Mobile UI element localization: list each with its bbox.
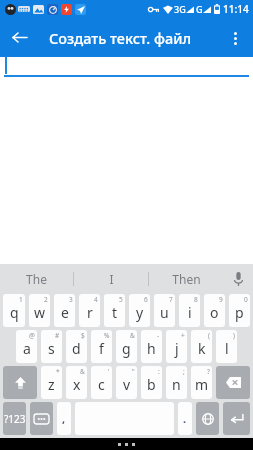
button[interactable]: ' xyxy=(91,366,112,399)
staticText: n xyxy=(172,375,181,394)
button[interactable]: 9 xyxy=(204,294,225,327)
button[interactable]: Enter xyxy=(223,402,250,435)
button[interactable]: + xyxy=(166,330,187,363)
button[interactable]: 7 xyxy=(154,294,175,327)
button[interactable]: 6 xyxy=(129,294,150,327)
staticText: e xyxy=(61,303,69,322)
staticText: - xyxy=(157,331,160,340)
button[interactable]: # xyxy=(41,330,62,363)
staticText: $ xyxy=(81,331,85,340)
staticText: @ xyxy=(29,331,35,340)
staticText: q xyxy=(10,303,19,322)
staticText: : xyxy=(158,367,160,376)
button[interactable]: Language xyxy=(196,402,219,435)
staticText: 2 xyxy=(44,295,48,304)
button[interactable]: * xyxy=(41,366,62,399)
staticText: % xyxy=(104,331,110,340)
staticText: 3G xyxy=(174,3,186,15)
staticText: ? xyxy=(207,367,210,376)
button[interactable]: 5 xyxy=(104,294,125,327)
button[interactable]: 8 xyxy=(179,294,200,327)
staticText: * xyxy=(56,367,60,376)
staticText: Создать текст. файл xyxy=(49,28,192,48)
staticText: m xyxy=(195,375,209,394)
staticText: o xyxy=(210,303,219,322)
staticText: t xyxy=(112,303,118,322)
staticText: Then xyxy=(172,271,201,287)
staticText: 11:14 xyxy=(223,2,249,16)
button[interactable]: ; xyxy=(166,366,187,399)
staticText: + xyxy=(181,331,185,340)
button[interactable]: . xyxy=(178,402,192,435)
button[interactable]: The xyxy=(0,264,73,294)
button[interactable]: Then xyxy=(149,264,223,294)
button[interactable]: @ xyxy=(16,330,37,363)
staticText: l xyxy=(225,339,229,358)
staticText: The xyxy=(26,271,47,287)
button[interactable]: More options xyxy=(217,20,253,56)
staticText: y xyxy=(136,303,144,322)
staticText: j xyxy=(175,339,179,358)
button[interactable]: 3 xyxy=(54,294,75,327)
staticText: v xyxy=(123,375,131,394)
staticText: z xyxy=(48,375,55,394)
staticText: 8 xyxy=(194,295,198,304)
button[interactable]: I xyxy=(74,264,148,294)
button[interactable]: Shift xyxy=(3,366,37,399)
staticText: d xyxy=(72,339,81,358)
staticText: 6 xyxy=(144,295,148,304)
button[interactable]: : xyxy=(141,366,162,399)
staticText: h xyxy=(147,339,156,358)
staticText: x xyxy=(73,375,81,394)
staticText: k xyxy=(198,339,206,358)
staticText: s xyxy=(48,339,55,358)
button[interactable]: Back xyxy=(0,18,39,57)
button[interactable]: " xyxy=(116,366,137,399)
staticText: 1 xyxy=(19,295,23,304)
button[interactable]: Symbols xyxy=(3,402,26,435)
button[interactable]: 4 xyxy=(79,294,100,327)
staticText: ?123 xyxy=(4,412,26,426)
staticText: 7 xyxy=(169,295,173,304)
button[interactable]: & xyxy=(116,330,137,363)
staticText: , xyxy=(62,411,66,426)
button[interactable]: Backspace xyxy=(216,366,250,399)
button[interactable]: % xyxy=(91,330,112,363)
button[interactable]: Emoji xyxy=(30,402,53,435)
button[interactable]: & xyxy=(66,366,87,399)
staticText: 4 xyxy=(94,295,98,304)
staticText: # xyxy=(55,331,60,340)
staticText: b xyxy=(147,375,156,394)
staticText: i xyxy=(188,303,192,322)
staticText: r xyxy=(87,303,93,322)
button[interactable]: ( xyxy=(191,330,212,363)
staticText: f xyxy=(99,339,104,358)
staticText: 9 xyxy=(219,295,223,304)
staticText: 3 xyxy=(69,295,73,304)
staticText: ) xyxy=(233,331,235,340)
staticText: u xyxy=(160,303,169,322)
staticText: ; xyxy=(183,367,185,376)
button[interactable]: $ xyxy=(66,330,87,363)
button[interactable]: - xyxy=(141,330,162,363)
staticText: . xyxy=(183,411,187,426)
button[interactable]: 0 xyxy=(229,294,250,327)
staticText: ' xyxy=(108,367,110,376)
button[interactable]: 1 xyxy=(3,294,25,327)
staticText: & xyxy=(80,367,85,376)
staticText: a xyxy=(23,339,31,358)
staticText: g xyxy=(122,339,131,358)
button[interactable]: 2 xyxy=(29,294,50,327)
staticText: 0 xyxy=(244,295,248,304)
staticText: p xyxy=(235,303,244,322)
button[interactable]: Voice input xyxy=(223,264,253,294)
button[interactable]: , xyxy=(57,402,71,435)
staticText: 5 xyxy=(119,295,123,304)
button[interactable]: ? xyxy=(191,366,212,399)
staticText: " xyxy=(132,367,135,376)
button[interactable]: ) xyxy=(216,330,237,363)
staticText: & xyxy=(130,331,135,340)
staticText: c xyxy=(98,375,105,394)
